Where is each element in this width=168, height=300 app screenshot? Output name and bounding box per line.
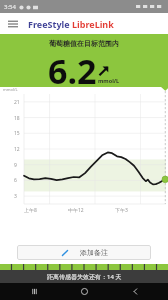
staticText: mmol/L: [3, 87, 18, 92]
staticText: 21: [14, 99, 20, 106]
staticText: 上午8: [24, 207, 37, 214]
button[interactable]: Home: [67, 283, 101, 300]
other: Glucose rising: [98, 65, 110, 77]
staticText: 18: [14, 115, 20, 122]
staticText: LibreLink: [72, 18, 114, 30]
staticText: 3: [14, 193, 17, 200]
staticText: 6.2: [48, 48, 97, 87]
staticText: 9: [14, 162, 17, 169]
staticText: 6: [14, 177, 17, 184]
button[interactable]: Recent apps: [17, 283, 51, 300]
staticText: 中午12: [68, 207, 84, 214]
staticText: 添加备注: [80, 248, 108, 257]
staticText: FreeStyle: [28, 18, 70, 30]
button[interactable]: Menu: [4, 15, 22, 33]
staticText: 15: [14, 130, 20, 137]
staticText: 距离传感器失效还有：14 天: [47, 273, 122, 281]
staticText: 下午3: [115, 207, 128, 214]
staticText: 葡萄糖值在目标范围内: [49, 39, 119, 48]
staticText: 12: [14, 146, 20, 153]
button[interactable]: 添加备注: [17, 245, 151, 260]
button[interactable]: Back: [118, 283, 152, 300]
staticText: 3:54: [4, 3, 16, 11]
staticText: mmol/L: [98, 77, 120, 84]
